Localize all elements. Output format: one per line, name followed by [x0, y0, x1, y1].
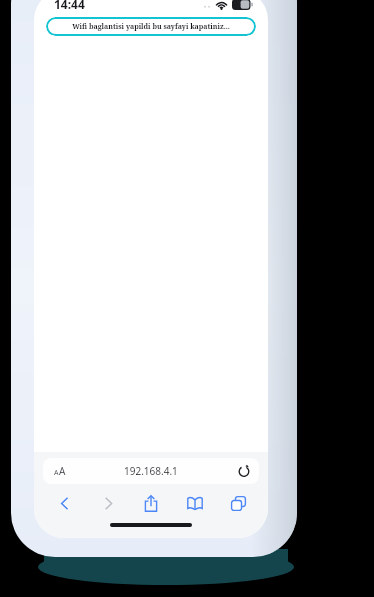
button[interactable]: Wifi baglantisi yapildi bu sayfayi kapat… — [46, 17, 256, 36]
button[interactable]: Forward — [92, 491, 124, 515]
staticText: A — [54, 468, 59, 478]
staticText: Wifi baglantisi yapildi bu sayfayi kapat… — [72, 22, 230, 32]
staticText: 14:44 — [54, 0, 85, 12]
button[interactable]: Tabs — [222, 491, 254, 515]
staticText: A — [59, 464, 66, 478]
button[interactable]: Text size — [50, 462, 70, 480]
button[interactable]: Share — [135, 491, 167, 515]
button[interactable]: Text size — [43, 458, 259, 484]
staticText: 192.168.4.1 — [124, 464, 178, 478]
button[interactable]: Back — [48, 491, 80, 515]
button[interactable]: Reload — [236, 463, 252, 479]
button[interactable]: Bookmarks — [179, 491, 211, 515]
